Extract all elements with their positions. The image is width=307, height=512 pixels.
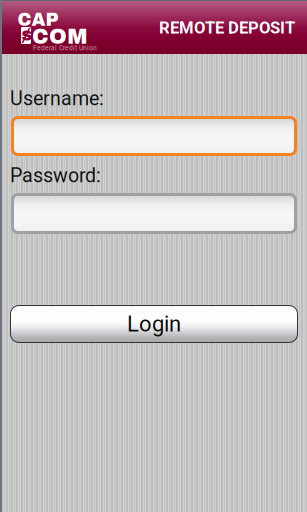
staticText: Login [127, 311, 181, 337]
staticText: Federal Credit Union [33, 44, 97, 52]
button[interactable]: Login [10, 305, 298, 343]
staticText: CAP [17, 10, 58, 30]
staticText: Password: [10, 164, 101, 187]
staticText: COM [32, 25, 88, 48]
staticText: REMOTE DEPOSIT [159, 18, 295, 37]
staticText: Username: [10, 87, 104, 110]
staticText: S [21, 27, 32, 43]
